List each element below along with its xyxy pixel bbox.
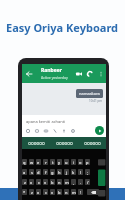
staticText: o — [79, 160, 82, 165]
button[interactable]: Location — [69, 127, 76, 134]
staticText: Ranbeer — [41, 67, 62, 74]
staticText: w — [30, 160, 34, 165]
staticText: oooooo — [56, 140, 73, 146]
button[interactable]: v — [43, 179, 48, 185]
staticText: oooooo — [84, 140, 101, 146]
button[interactable]: l — [78, 169, 83, 175]
staticText: b — [51, 180, 54, 185]
button[interactable]: u — [64, 159, 69, 165]
button[interactable]: oooooo — [78, 137, 106, 149]
button[interactable]: Emoji — [24, 127, 31, 134]
button[interactable]: Gallery — [33, 127, 40, 134]
staticText: ! — [80, 190, 82, 195]
button[interactable]: c — [36, 179, 41, 185]
button[interactable]: oooooo — [50, 137, 78, 149]
button[interactable]: . — [78, 179, 83, 185]
button[interactable]: oooooo — [22, 137, 50, 149]
staticText: , — [73, 180, 75, 185]
button[interactable]: f — [43, 169, 48, 175]
staticText: x — [37, 190, 40, 195]
button[interactable]: Camera — [42, 127, 49, 134]
button[interactable]: i — [71, 159, 76, 165]
button[interactable]: h — [57, 169, 62, 175]
button[interactable]: o — [78, 159, 83, 165]
staticText: e — [37, 160, 40, 165]
staticText: z — [24, 180, 26, 185]
button[interactable]: m — [71, 189, 76, 195]
button[interactable]: namaskara — [76, 89, 103, 98]
button[interactable]: / — [85, 179, 90, 185]
staticText: c — [45, 190, 47, 195]
button[interactable]: , — [71, 179, 76, 185]
staticText: d — [37, 170, 40, 175]
button[interactable]: Backspace — [87, 189, 99, 195]
staticText: / — [87, 180, 89, 185]
button[interactable]: k — [71, 169, 76, 175]
staticText: p — [86, 160, 89, 165]
button[interactable]: c — [43, 189, 48, 195]
button[interactable]: b — [50, 179, 55, 185]
button[interactable]: q — [22, 159, 27, 165]
staticText: Easy Oriya Keyboard — [6, 20, 119, 35]
staticText: x — [30, 180, 33, 185]
button[interactable]: g — [50, 169, 55, 175]
button[interactable]: p — [85, 159, 90, 165]
staticText: Active yesterday — [41, 75, 68, 80]
staticText: j — [66, 170, 68, 175]
button[interactable]: x — [29, 179, 34, 185]
staticText: i — [73, 160, 75, 165]
button[interactable]: v — [50, 189, 55, 195]
staticText: k — [72, 170, 75, 175]
staticText: * — [23, 190, 26, 195]
staticText: n — [65, 190, 68, 195]
staticText: r — [45, 160, 47, 165]
staticText: b — [58, 190, 61, 195]
button[interactable]: s — [29, 169, 34, 175]
button[interactable]: y — [57, 159, 62, 165]
staticText: a — [23, 170, 26, 175]
staticText: v — [44, 180, 47, 185]
button[interactable]: z — [29, 189, 34, 195]
button[interactable]: r — [43, 159, 48, 165]
staticText: ; — [87, 170, 89, 175]
staticText: f — [45, 170, 47, 175]
staticText: u — [65, 160, 68, 165]
staticText: 10:41 pm — [89, 99, 103, 103]
button[interactable]: Audio — [60, 127, 67, 134]
staticText: s — [31, 170, 33, 175]
staticText: t — [52, 160, 54, 165]
button[interactable]: Call — [86, 70, 94, 78]
button[interactable]: d — [36, 169, 41, 175]
button[interactable]: e — [36, 159, 41, 165]
button[interactable]: n — [64, 189, 69, 195]
button[interactable]: Send — [95, 126, 104, 135]
staticText: g — [51, 170, 54, 175]
staticText: z — [31, 190, 33, 195]
button[interactable]: Attach file — [51, 127, 58, 134]
button[interactable]: m — [64, 179, 69, 185]
button[interactable]: j — [64, 169, 69, 175]
button[interactable]: t — [50, 159, 55, 165]
button[interactable]: b — [57, 189, 62, 195]
staticText: q — [23, 160, 26, 165]
staticText: . — [80, 180, 82, 185]
button[interactable]: ; — [85, 169, 90, 175]
button[interactable]: n — [57, 179, 62, 185]
button[interactable]: More options — [97, 70, 105, 78]
staticText: oooooo — [28, 140, 45, 146]
staticText: c — [38, 180, 40, 185]
staticText: m — [72, 190, 76, 195]
button[interactable]: * — [22, 189, 27, 195]
button[interactable]: x — [36, 189, 41, 195]
staticText: namaskara — [79, 91, 100, 96]
button[interactable]: Back — [24, 69, 33, 78]
button[interactable]: w — [29, 159, 34, 165]
staticText: n — [58, 180, 61, 185]
staticText: apana kemiti achanti — [26, 119, 66, 124]
staticText: y — [58, 160, 61, 165]
button[interactable]: ! — [78, 189, 83, 195]
button[interactable]: z — [22, 179, 27, 185]
staticText: m — [65, 180, 69, 185]
button[interactable]: a — [22, 169, 27, 175]
button[interactable]: Video call — [75, 70, 83, 78]
